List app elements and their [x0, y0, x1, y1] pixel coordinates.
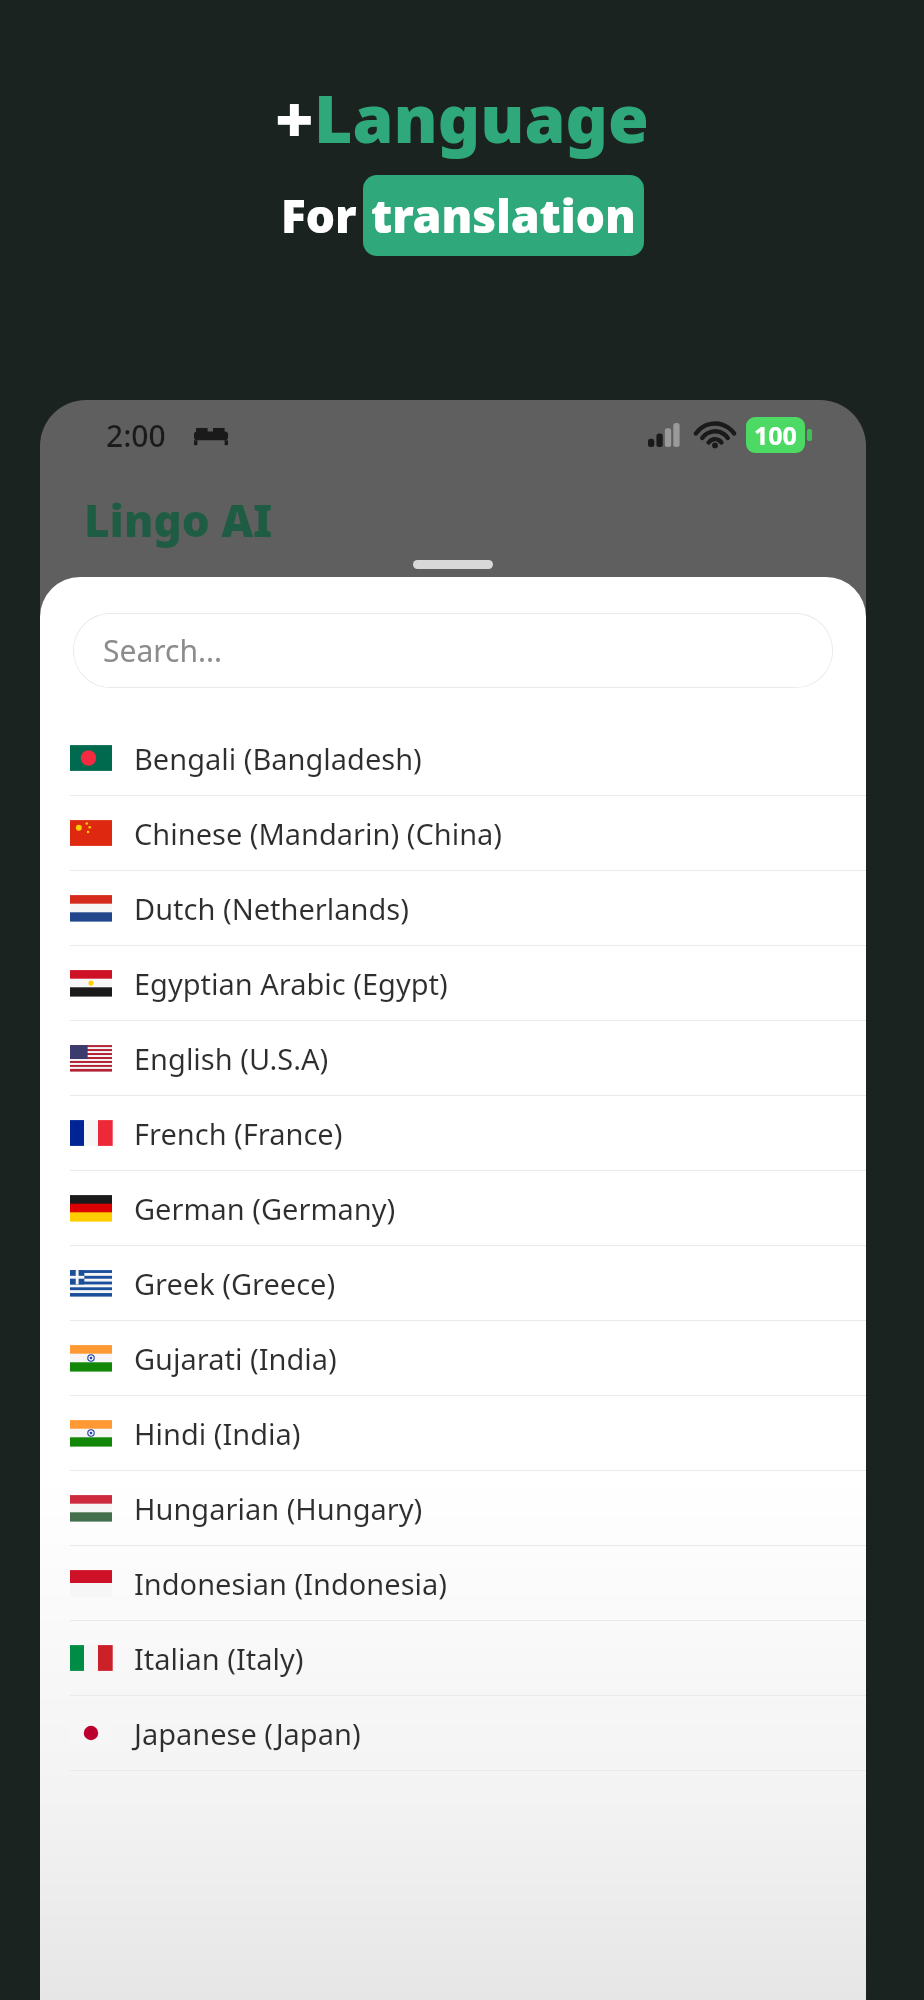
staticText: Gujarati (India) — [134, 1339, 337, 1378]
staticText: 100 — [754, 418, 797, 452]
staticText: Greek (Greece) — [134, 1264, 336, 1303]
button[interactable]: Indonesian (Indonesia) — [40, 1546, 866, 1620]
staticText: Bengali (Bangladesh) — [134, 739, 422, 778]
button[interactable]: Japanese (Japan) — [40, 1696, 866, 1770]
button[interactable]: Search... — [73, 613, 833, 688]
staticText: translation — [371, 184, 636, 247]
button[interactable]: Hungarian (Hungary) — [40, 1471, 866, 1545]
staticText: Search... — [103, 630, 223, 671]
button[interactable]: Greek (Greece) — [40, 1246, 866, 1320]
staticText: Japanese (Japan) — [134, 1714, 361, 1753]
button[interactable]: Chinese (Mandarin) (China) — [40, 796, 866, 870]
staticText: Hindi (India) — [134, 1414, 301, 1453]
button[interactable]: Gujarati (India) — [40, 1321, 866, 1395]
button[interactable]: German (Germany) — [40, 1171, 866, 1245]
staticText: Chinese (Mandarin) (China) — [134, 814, 503, 853]
staticText: Egyptian Arabic (Egypt) — [134, 964, 448, 1003]
button[interactable]: Egyptian Arabic (Egypt) — [40, 946, 866, 1020]
staticText: Italian (Italy) — [134, 1639, 304, 1678]
button[interactable]: French (France) — [40, 1096, 866, 1170]
staticText: French (France) — [134, 1114, 343, 1153]
staticText: English (U.S.A) — [134, 1039, 329, 1078]
staticText: Language — [314, 72, 649, 162]
staticText: Lingo AI — [84, 490, 273, 550]
button[interactable]: English (U.S.A) — [40, 1021, 866, 1095]
staticText: Hungarian (Hungary) — [134, 1489, 423, 1528]
staticText: German (Germany) — [134, 1189, 396, 1228]
button[interactable]: Italian (Italy) — [40, 1621, 866, 1695]
staticText: 2:00 — [106, 415, 166, 456]
button[interactable]: Bengali (Bangladesh) — [40, 721, 866, 795]
staticText: Indonesian (Indonesia) — [134, 1564, 447, 1603]
staticText: + — [275, 72, 314, 162]
staticText: For — [281, 184, 357, 247]
button[interactable]: Dutch (Netherlands) — [40, 871, 866, 945]
staticText: Dutch (Netherlands) — [134, 889, 409, 928]
button[interactable]: Hindi (India) — [40, 1396, 866, 1470]
